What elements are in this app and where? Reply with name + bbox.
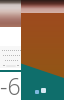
button[interactable]: Call [35,90,39,94]
staticText: -6° [0,70,21,98]
button[interactable]: Apps [41,88,46,93]
